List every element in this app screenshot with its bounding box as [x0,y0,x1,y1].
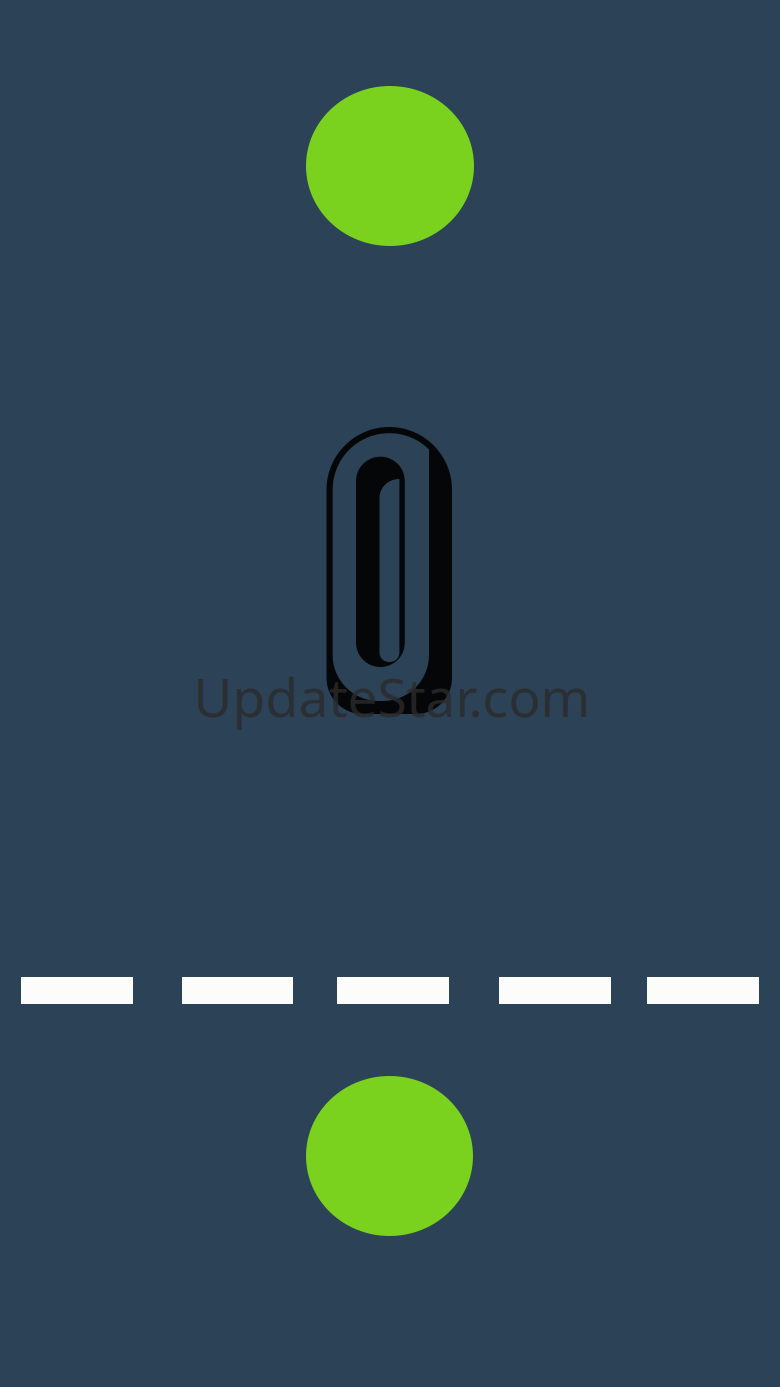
staticText: UpdateStar.com [193,661,590,732]
